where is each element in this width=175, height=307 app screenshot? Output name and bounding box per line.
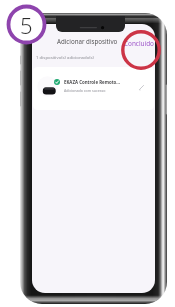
staticText: EKAZA Controle Remoto...	[64, 79, 121, 85]
button[interactable]: Concluído	[123, 38, 155, 49]
staticText: Concluído	[124, 39, 154, 48]
staticText: Adicionar dispositivo	[57, 37, 118, 45]
staticText: Adicionado com sucesso	[64, 88, 106, 93]
button[interactable]: Editar	[137, 83, 146, 92]
staticText: 1 dispositivo(s) adicionado(s)	[36, 54, 94, 60]
button[interactable]: EKAZA Controle Remoto...	[33, 67, 154, 110]
staticText: 5	[20, 10, 33, 40]
